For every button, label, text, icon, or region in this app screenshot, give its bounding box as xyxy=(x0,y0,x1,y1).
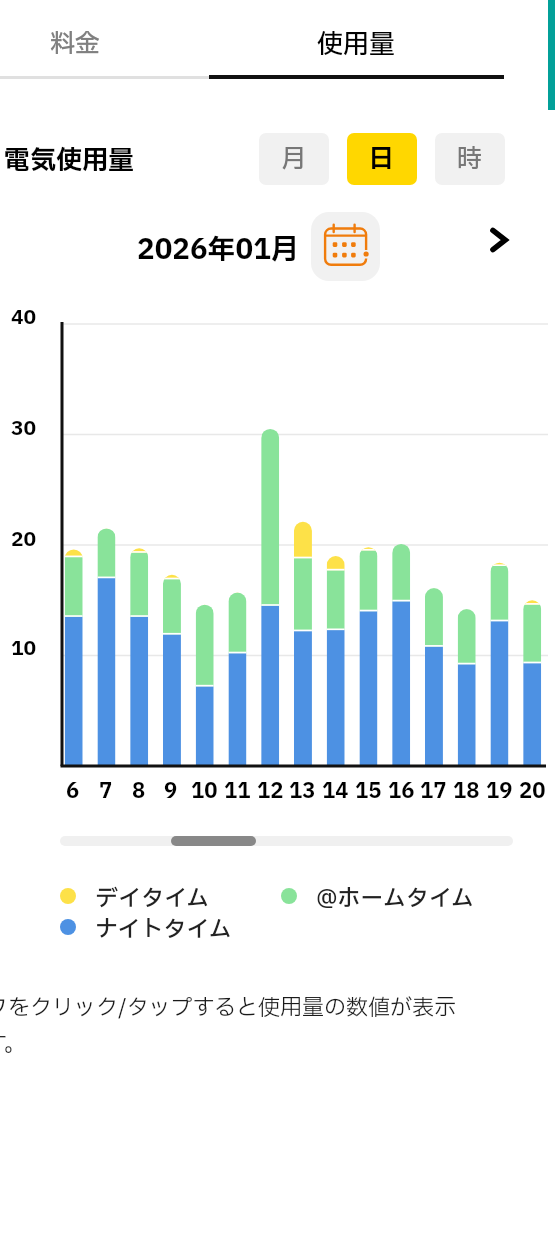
staticText: 6 xyxy=(66,776,80,802)
staticText: ※グラフをクリック/タップすると使用量の数値が表示さ xyxy=(0,992,475,1058)
button[interactable]: 使用量 xyxy=(209,6,504,83)
staticText: 20 xyxy=(519,776,546,802)
staticText: 料金 xyxy=(50,26,101,63)
staticText: 2026年01月 xyxy=(137,229,299,271)
staticText: 14 xyxy=(322,776,349,802)
staticText: 13 xyxy=(289,776,316,802)
staticText: @ホームタイム xyxy=(316,882,474,910)
staticText: 20 xyxy=(11,525,37,555)
staticText: デイタイム xyxy=(95,882,210,910)
staticText: 17 xyxy=(420,776,447,802)
staticText: 9 xyxy=(164,776,178,802)
staticText: 30 xyxy=(11,414,37,444)
staticText: 12 xyxy=(257,776,284,802)
staticText: 16 xyxy=(388,776,415,802)
staticText: 10 xyxy=(191,776,218,802)
staticText: ナイトタイム xyxy=(95,913,232,941)
button[interactable]: 料金 xyxy=(0,6,285,83)
staticText: 15 xyxy=(355,776,382,802)
button[interactable]: 日 xyxy=(347,133,417,185)
staticText: 19 xyxy=(486,776,513,802)
button[interactable]: カレンダー xyxy=(311,212,380,281)
staticText: 40 xyxy=(11,303,37,333)
staticText: 7 xyxy=(99,776,113,802)
staticText: 11 xyxy=(224,776,251,802)
staticText: 8 xyxy=(132,776,146,802)
staticText: 月 xyxy=(281,141,307,178)
button[interactable]: 次へ xyxy=(470,212,526,268)
staticText: 電気使用量 xyxy=(4,141,135,180)
staticText: 18 xyxy=(453,776,480,802)
staticText: 日 xyxy=(369,141,395,178)
staticText: 使用量 xyxy=(317,25,396,64)
staticText: れます。 xyxy=(0,1028,26,1061)
button[interactable]: 月 xyxy=(259,133,329,185)
staticText: 10 xyxy=(11,634,37,664)
button[interactable]: 時 xyxy=(435,133,505,185)
staticText: 時 xyxy=(457,141,483,178)
